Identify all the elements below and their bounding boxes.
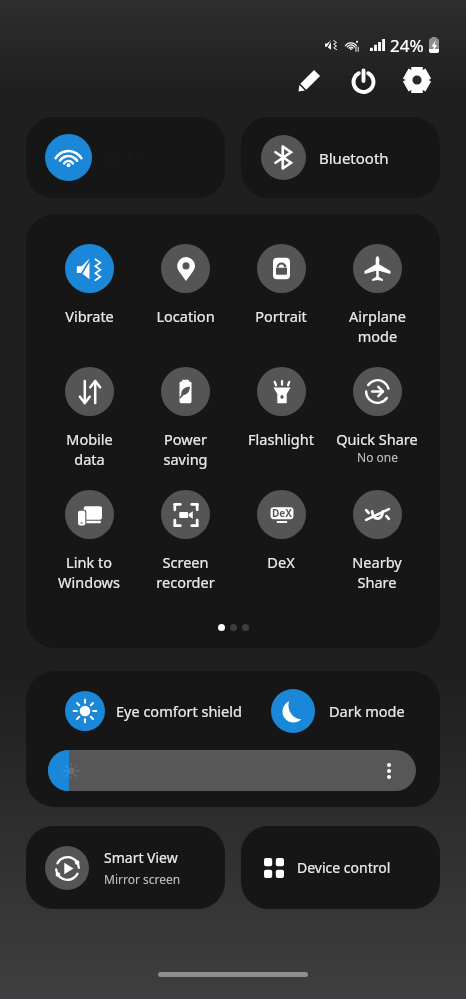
- staticText: Bluetooth: [319, 148, 389, 168]
- button[interactable]: Airplane mode: [329, 244, 425, 346]
- staticText: 24%: [390, 34, 424, 57]
- button[interactable]: Portrait: [233, 244, 329, 326]
- button[interactable]: Edit quick settings: [286, 57, 332, 103]
- button[interactable]: [48, 750, 416, 791]
- button[interactable]: Nearby Share: [329, 490, 425, 592]
- staticText: Mobile data: [66, 429, 113, 469]
- staticText: Airplane mode: [349, 306, 406, 346]
- staticText: Vibrate: [65, 306, 114, 326]
- staticText: Mirror screen: [104, 871, 181, 887]
- button[interactable]: Link to Windows: [41, 490, 137, 592]
- button[interactable]: Location: [137, 244, 233, 326]
- button[interactable]: Mobile data: [41, 367, 137, 469]
- staticText: Quick Share: [336, 429, 418, 449]
- button[interactable]: Settings: [394, 57, 440, 103]
- staticText: Power saving: [163, 429, 208, 469]
- staticText: Smart View: [104, 848, 178, 867]
- button[interactable]: Vibrate: [41, 244, 137, 326]
- button[interactable]: Quick Share: [329, 367, 425, 465]
- staticText: Nearby Share: [352, 552, 402, 592]
- staticText: Portrait: [255, 306, 307, 326]
- button[interactable]: Wi-Fi: [26, 117, 225, 198]
- button[interactable]: Eye comfort shield: [26, 671, 246, 750]
- staticText: Eye comfort shield: [116, 701, 242, 721]
- staticText: Screen recorder: [156, 552, 215, 592]
- staticText: No one: [357, 449, 398, 465]
- staticText: Dark mode: [329, 701, 405, 721]
- staticText: Device control: [297, 858, 391, 877]
- staticText: DeX: [267, 552, 295, 572]
- button[interactable]: Screen recorder: [137, 490, 233, 592]
- button[interactable]: Smart View: [26, 826, 225, 909]
- button[interactable]: Bluetooth: [241, 117, 440, 198]
- button[interactable]: DeX: [233, 490, 329, 572]
- button[interactable]: Device control: [241, 826, 440, 909]
- button[interactable]: Power off: [340, 57, 386, 103]
- button[interactable]: Dark mode: [233, 671, 440, 750]
- staticText: Link to Windows: [58, 552, 120, 592]
- button[interactable]: Flashlight: [233, 367, 329, 449]
- staticText: Flashlight: [248, 429, 314, 449]
- button[interactable]: Power saving: [137, 367, 233, 469]
- staticText: Location: [156, 306, 215, 326]
- staticText: DeX: [272, 506, 292, 520]
